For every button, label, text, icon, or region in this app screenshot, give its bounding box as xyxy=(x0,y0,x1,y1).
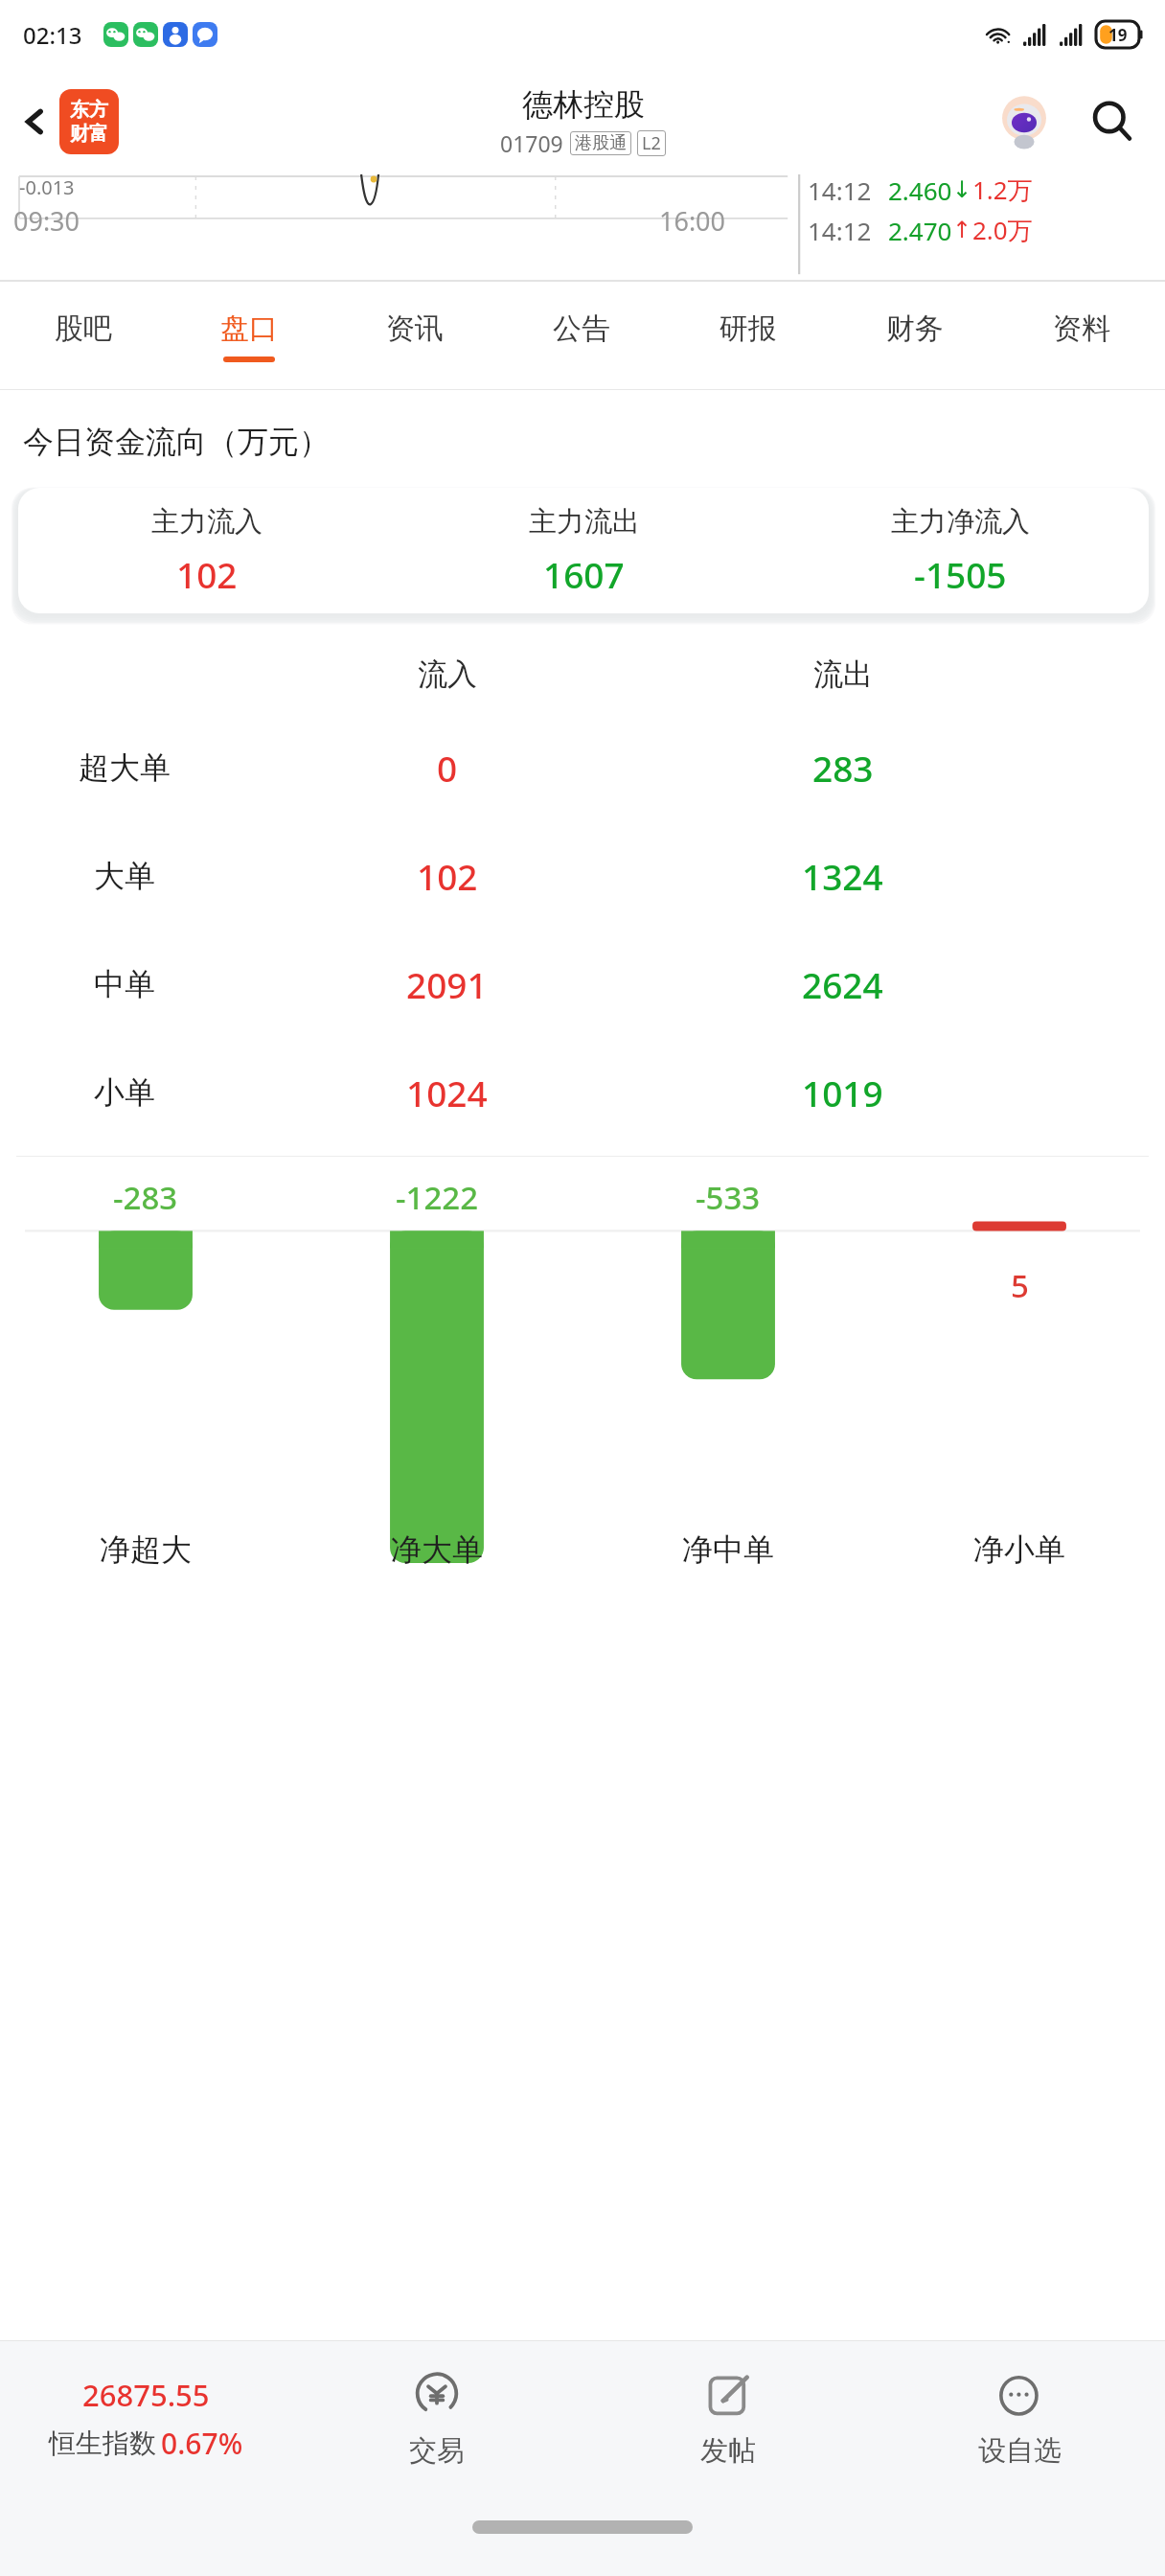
staticText: 净超大 xyxy=(100,1530,192,1569)
staticText: 小单 xyxy=(94,1073,155,1112)
staticText: ↑ xyxy=(952,217,972,243)
staticText: 主力流入 xyxy=(151,504,263,540)
staticText: 16:00 xyxy=(659,203,726,239)
button[interactable]: 净大单 xyxy=(291,1530,582,1569)
staticText: 股吧 xyxy=(55,310,112,347)
staticText: 交易 xyxy=(409,2433,465,2469)
button[interactable]: East Money xyxy=(59,89,119,154)
staticText: 14:12 xyxy=(808,214,872,247)
button[interactable]: 财务 xyxy=(832,282,998,390)
staticText: 1019 xyxy=(802,1069,883,1116)
staticText: 发帖 xyxy=(700,2433,756,2469)
staticText: 资料 xyxy=(1053,310,1110,347)
button[interactable]: 交易 xyxy=(291,2341,582,2496)
staticText: 1.2万 xyxy=(972,172,1033,207)
button[interactable]: 主力流出 xyxy=(396,488,772,613)
button[interactable]: 26875.55 xyxy=(0,2341,291,2496)
staticText: 09:30 xyxy=(13,203,80,239)
staticText: 设自选 xyxy=(978,2433,1062,2469)
button[interactable]: 研报 xyxy=(665,282,832,390)
staticText: ↓ xyxy=(952,176,972,203)
staticText: 恒生指数 xyxy=(49,2426,156,2460)
button[interactable]: 资料 xyxy=(998,282,1165,390)
staticText: -0.013 xyxy=(19,174,75,200)
staticText: -1222 xyxy=(396,1176,479,1219)
staticText: 2.470 xyxy=(888,214,952,247)
staticText: -283 xyxy=(113,1176,178,1219)
button[interactable]: 资讯 xyxy=(331,282,498,390)
staticText: 02:13 xyxy=(23,19,82,51)
button[interactable]: 设自选 xyxy=(874,2341,1165,2496)
staticText: 283 xyxy=(812,744,874,792)
staticText: 财务 xyxy=(886,310,944,347)
staticText: 2091 xyxy=(406,960,488,1008)
staticText: 5 xyxy=(1011,1264,1029,1307)
button[interactable]: 超大单 xyxy=(0,713,1165,821)
staticText: 1607 xyxy=(543,550,625,598)
button[interactable]: 公告 xyxy=(498,282,665,390)
staticText: 2624 xyxy=(802,960,883,1008)
staticText: 102 xyxy=(176,550,238,598)
button[interactable]: 主力净流入 xyxy=(772,488,1149,613)
staticText: 中单 xyxy=(94,965,155,1003)
button[interactable]: 大单 xyxy=(0,821,1165,930)
staticText: 102 xyxy=(417,852,478,900)
staticText: 0.67% xyxy=(161,2424,243,2463)
staticText: 1024 xyxy=(406,1069,488,1116)
staticText: 19 xyxy=(1108,24,1128,46)
button[interactable]: Back xyxy=(6,93,63,150)
staticText: 净小单 xyxy=(973,1530,1065,1569)
staticText: 主力流出 xyxy=(529,504,640,540)
button[interactable]: 发帖 xyxy=(582,2341,874,2496)
button[interactable]: 盘口 xyxy=(166,282,331,390)
staticText: 主力净流入 xyxy=(891,504,1030,540)
staticText: 东方 xyxy=(70,98,108,122)
staticText: 超大单 xyxy=(79,748,171,787)
button[interactable]: AI assistant xyxy=(991,88,1058,155)
staticText: 1324 xyxy=(802,852,883,900)
staticText: 港股通 xyxy=(575,132,627,154)
staticText: 26875.55 xyxy=(82,2375,210,2415)
staticText: L2 xyxy=(642,131,661,155)
staticText: 今日资金流向（万元） xyxy=(23,423,330,461)
staticText: 流出 xyxy=(813,655,873,693)
staticText: -1505 xyxy=(914,550,1007,598)
button[interactable]: 主力流入 xyxy=(18,488,396,613)
button[interactable]: 股吧 xyxy=(0,282,166,390)
staticText: 资讯 xyxy=(386,310,444,347)
staticText: 14:12 xyxy=(808,173,872,207)
staticText: 公告 xyxy=(553,310,610,347)
staticText: 德林控股 xyxy=(522,85,645,124)
button[interactable]: 净小单 xyxy=(874,1530,1165,1569)
staticText: 大单 xyxy=(94,857,155,895)
staticText: 净中单 xyxy=(682,1530,774,1569)
staticText: 2.0万 xyxy=(972,213,1033,247)
button[interactable]: 小单 xyxy=(0,1038,1165,1146)
staticText: 流入 xyxy=(418,655,477,693)
button[interactable]: 中单 xyxy=(0,930,1165,1038)
button[interactable]: 净超大 xyxy=(0,1530,291,1569)
button[interactable]: Search xyxy=(1079,88,1146,155)
staticText: 净大单 xyxy=(391,1530,483,1569)
staticText: 01709 xyxy=(500,128,563,158)
staticText: 研报 xyxy=(720,310,777,347)
button[interactable]: 净中单 xyxy=(582,1530,874,1569)
staticText: 盘口 xyxy=(220,310,278,347)
staticText: -533 xyxy=(696,1176,761,1219)
staticText: 0 xyxy=(437,744,458,792)
staticText: 2.460 xyxy=(888,173,952,207)
staticText: 财富 xyxy=(70,122,108,146)
